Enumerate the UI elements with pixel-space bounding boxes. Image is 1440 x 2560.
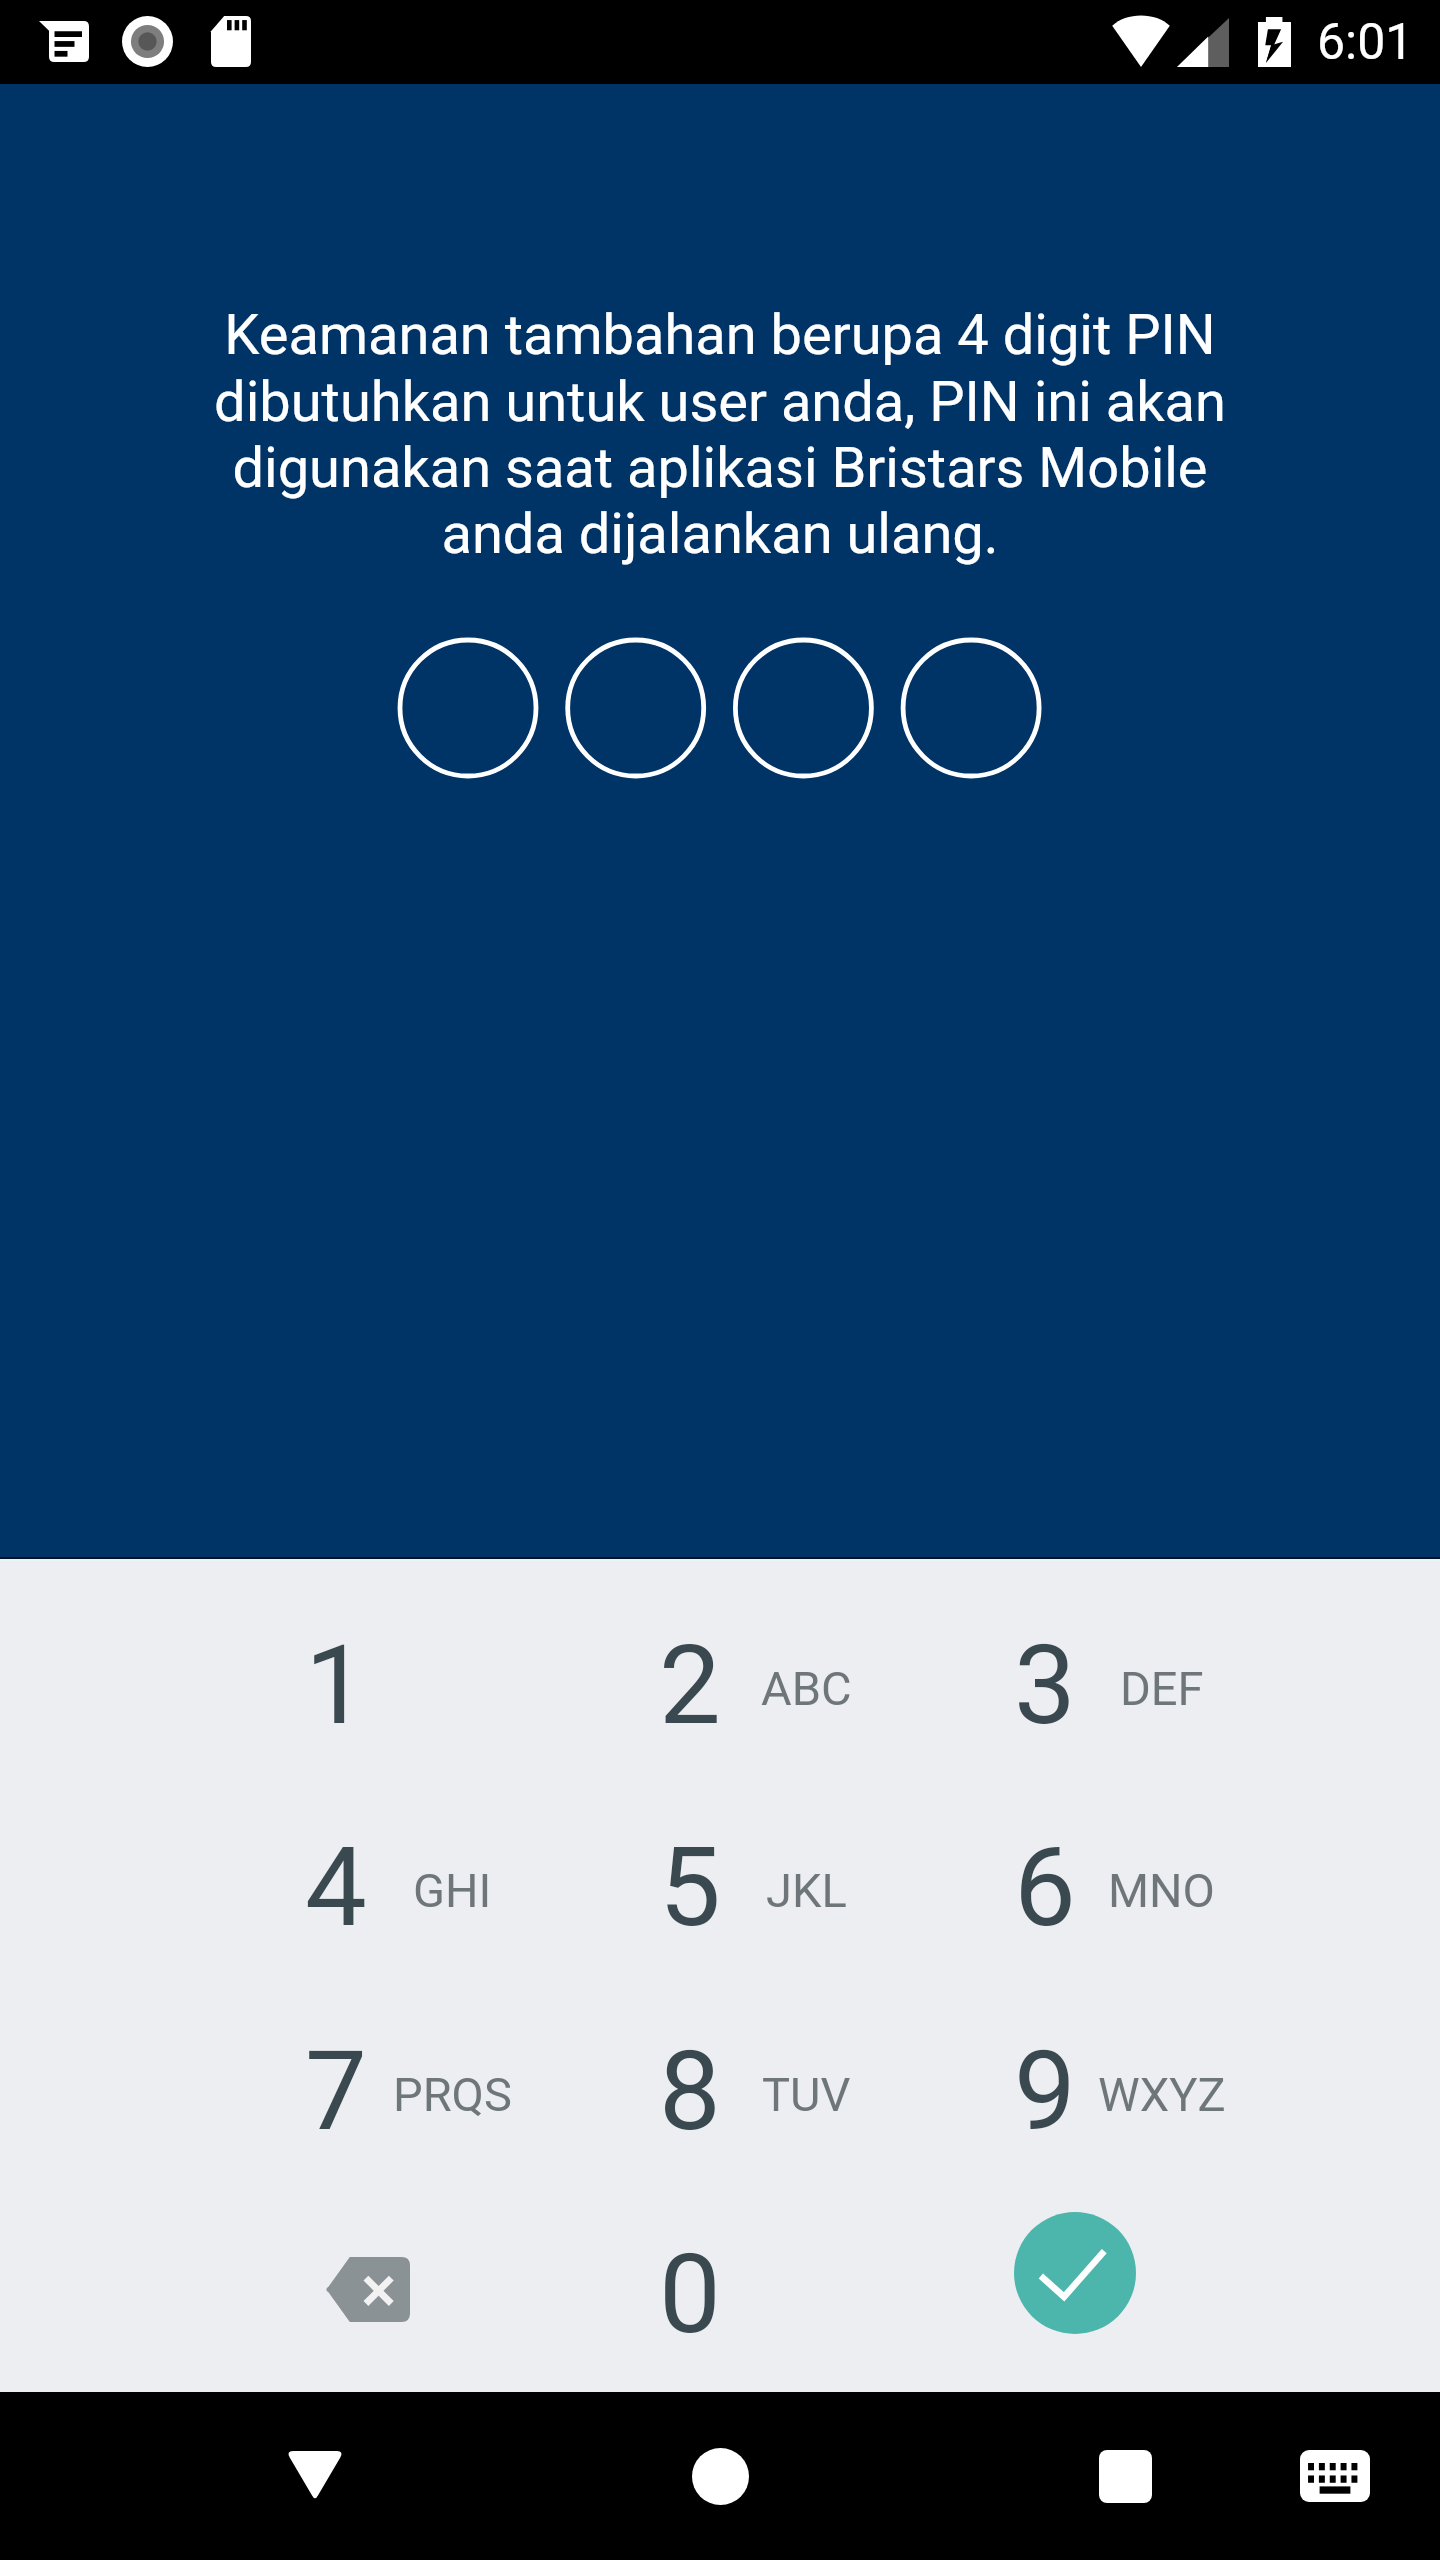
button[interactable]: 9 — [897, 1998, 1252, 2191]
button[interactable]: Home — [650, 2406, 790, 2546]
staticText: 1 — [305, 1621, 367, 1750]
staticText: GHI — [413, 1863, 492, 1918]
button[interactable]: 2 — [542, 1592, 897, 1785]
button[interactable]: Switch keyboard — [1265, 2406, 1405, 2546]
staticText: ABC — [761, 1661, 852, 1716]
staticText: 2 — [659, 1621, 721, 1750]
button[interactable]: Back — [245, 2406, 385, 2546]
button[interactable]: 1 — [188, 1592, 543, 1785]
staticText: 9 — [1014, 2027, 1076, 2156]
staticText: PRQS — [393, 2067, 512, 2122]
staticText: 6:01 — [1317, 13, 1414, 72]
button[interactable]: 8 — [542, 1998, 897, 2191]
staticText: Keamanan tambahan berupa 4 digit PIN dib… — [205, 302, 1235, 566]
staticText: 5 — [659, 1823, 721, 1952]
staticText: 8 — [659, 2027, 721, 2156]
staticText: TUV — [762, 2067, 851, 2122]
button[interactable]: 5 — [542, 1794, 897, 1987]
button[interactable]: Delete — [188, 2176, 543, 2369]
button[interactable]: 7 — [188, 1998, 543, 2191]
staticText: WXYZ — [1098, 2067, 1226, 2122]
button[interactable]: Confirm — [897, 2176, 1252, 2369]
staticText: DEF — [1120, 1661, 1204, 1716]
staticText: 3 — [1014, 1621, 1076, 1750]
staticText: MNO — [1108, 1863, 1215, 1918]
staticText: 0 — [659, 2230, 721, 2359]
button[interactable]: 6 — [897, 1794, 1252, 1987]
button[interactable]: 4 — [188, 1794, 543, 1987]
button[interactable]: Recent apps — [1055, 2406, 1195, 2546]
staticText: JKL — [766, 1863, 847, 1918]
button[interactable]: 3 — [897, 1592, 1252, 1785]
staticText: 4 — [305, 1823, 367, 1952]
staticText: 6 — [1014, 1823, 1076, 1952]
staticText: 7 — [305, 2027, 367, 2156]
button[interactable]: 0 — [542, 2201, 897, 2394]
